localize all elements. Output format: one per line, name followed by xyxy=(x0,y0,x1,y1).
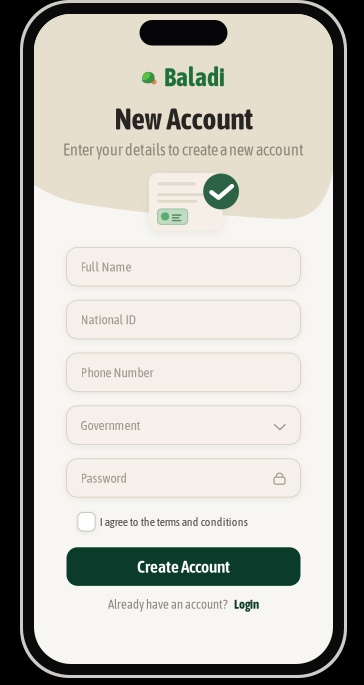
staticText: Baladi xyxy=(164,62,225,91)
button[interactable]: Password xyxy=(66,459,300,497)
button[interactable]: Create Account xyxy=(66,547,300,586)
button[interactable]: Login xyxy=(234,597,259,611)
staticText: Login xyxy=(234,597,259,611)
button[interactable]: National ID xyxy=(66,300,300,339)
staticText: Government xyxy=(80,417,140,433)
button[interactable]: I agree to the terms and conditions xyxy=(66,511,300,533)
staticText: Already have an account? xyxy=(108,597,228,611)
staticText: National ID xyxy=(80,312,135,327)
staticText: Full Name xyxy=(80,259,131,274)
staticText: Create Account xyxy=(137,557,230,576)
staticText: Phone Number xyxy=(80,365,153,380)
staticText: New Account xyxy=(114,102,252,136)
staticText: I agree to the terms and conditions xyxy=(100,515,248,528)
staticText: Password xyxy=(80,470,126,486)
button[interactable]: Government xyxy=(66,406,300,444)
staticText: Enter your details to create a new accou… xyxy=(63,141,304,159)
button[interactable]: Full Name xyxy=(66,247,300,286)
button[interactable]: Phone Number xyxy=(66,353,300,392)
